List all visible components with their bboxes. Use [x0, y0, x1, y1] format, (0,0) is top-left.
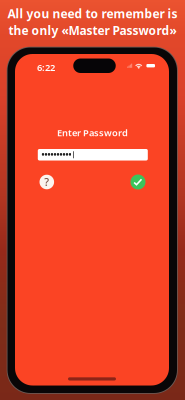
staticText: All you need to remember is — [7, 6, 177, 21]
button[interactable]: Confirm password — [130, 174, 145, 189]
staticText: Enter Password — [57, 126, 128, 139]
staticText: 6:22 — [37, 61, 55, 74]
button[interactable]: Help — [39, 175, 54, 189]
staticText: •••••••••• — [41, 149, 71, 160]
staticText: the only «Master Password» — [8, 22, 176, 38]
staticText: ? — [44, 175, 49, 189]
